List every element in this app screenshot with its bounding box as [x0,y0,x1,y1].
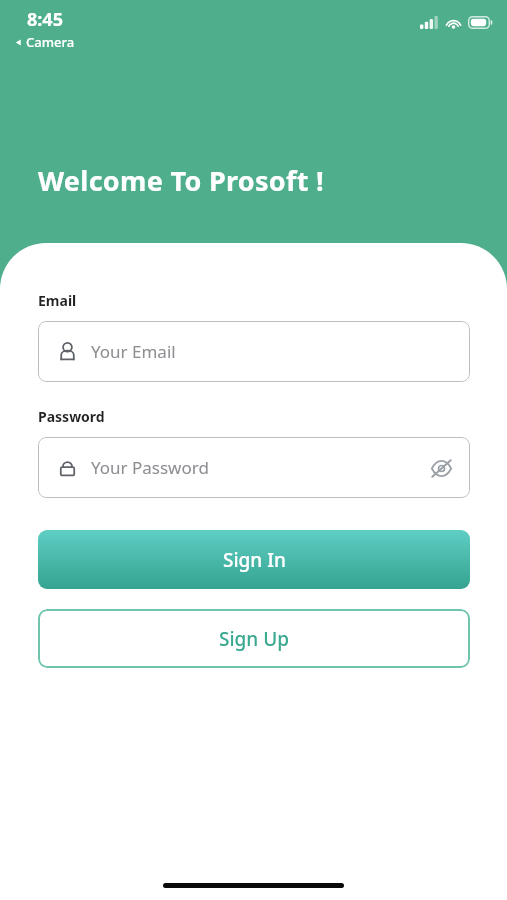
staticText: Camera [26,33,75,51]
staticText: Welcome To Prosoft ! [38,162,324,199]
staticText: Email [38,291,77,310]
staticText: Your Password [91,456,428,479]
button[interactable]: Show password [428,455,454,481]
staticText: 8:45 [27,7,63,32]
button[interactable]: Your Password [38,437,470,498]
staticText: Sign Up [219,626,290,652]
staticText: Password [38,407,105,426]
button[interactable]: Sign In [38,530,470,589]
button[interactable]: Sign Up [38,609,470,668]
staticText: Sign In [223,547,286,573]
button[interactable]: Your Email [38,321,470,382]
staticText: Your Email [91,340,454,363]
